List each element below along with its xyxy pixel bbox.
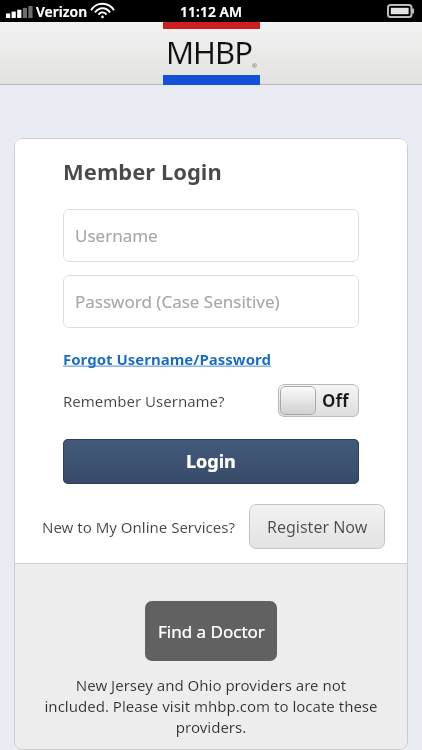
staticText: Member Login <box>63 156 222 186</box>
button[interactable]: Login <box>63 439 359 484</box>
staticText: New Jersey and Ohio providers are not in… <box>42 675 380 738</box>
staticText: Find a Doctor <box>158 620 265 643</box>
button[interactable]: Password (Case Sensitive) <box>63 275 359 328</box>
staticText: MHBP <box>166 31 252 73</box>
button[interactable]: Forgot Username/Password <box>63 348 271 370</box>
button[interactable]: Username <box>63 209 359 262</box>
staticText: Login <box>186 449 236 474</box>
button[interactable]: Find a Doctor <box>145 601 277 661</box>
button[interactable]: Remember Username toggle, off <box>278 384 359 417</box>
staticText: 11:12 AM <box>180 2 242 21</box>
staticText: Username <box>75 224 158 247</box>
staticText: Verizon <box>36 2 88 21</box>
staticText: Forgot Username/Password <box>63 349 271 369</box>
button[interactable]: Register Now <box>249 504 385 549</box>
staticText: Off <box>322 389 349 412</box>
staticText: Password (Case Sensitive) <box>75 290 280 313</box>
staticText: New to My Online Services? <box>42 517 235 537</box>
staticText: Register Now <box>267 516 368 538</box>
staticText: ® <box>252 62 257 70</box>
staticText: Remember Username? <box>63 391 225 411</box>
